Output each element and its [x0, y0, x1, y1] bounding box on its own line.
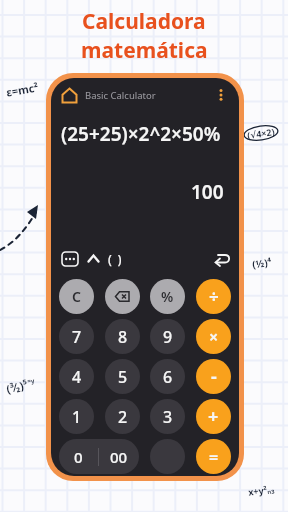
staticText: 1	[72, 406, 82, 428]
staticText: ε=mc²	[5, 79, 40, 100]
staticText: ( )	[108, 251, 124, 267]
staticText: matemática	[81, 36, 208, 65]
button[interactable]	[105, 279, 140, 314]
staticText: 8	[118, 326, 128, 348]
staticText: %	[161, 287, 174, 306]
staticText: C	[72, 287, 81, 306]
button[interactable]	[214, 88, 228, 102]
staticText: ×	[209, 326, 219, 348]
button[interactable]: +	[196, 399, 231, 434]
button[interactable]: 9	[150, 319, 185, 354]
button[interactable]: ×	[196, 319, 231, 354]
staticText: 0	[74, 447, 83, 467]
button[interactable]: 6	[150, 359, 185, 394]
staticText: 5	[118, 366, 128, 388]
button[interactable]: ÷	[196, 279, 231, 314]
button[interactable]: 2	[105, 399, 140, 434]
staticText: (½)⁴	[251, 255, 273, 271]
button[interactable]: C	[59, 279, 94, 314]
staticText: ⁼ʸ	[26, 375, 37, 390]
button[interactable]	[214, 252, 231, 266]
button[interactable]: %	[150, 279, 185, 314]
staticText: 3	[163, 406, 173, 428]
staticText: 100	[191, 179, 224, 205]
button[interactable]: 3	[150, 399, 185, 434]
button[interactable]: 5	[105, 359, 140, 394]
button[interactable]: -	[196, 359, 231, 394]
staticText: +	[208, 404, 219, 429]
staticText: Calculadora	[82, 7, 206, 36]
staticText: 4	[72, 366, 82, 388]
staticText: =	[209, 446, 219, 468]
button[interactable]: =	[196, 439, 231, 474]
staticText: 2	[118, 406, 128, 428]
button[interactable]	[150, 439, 185, 474]
staticText: 00	[110, 447, 128, 467]
staticText: 6	[163, 366, 173, 388]
button[interactable]: 7	[59, 319, 94, 354]
button[interactable]	[87, 252, 100, 266]
staticText: ÷	[209, 285, 219, 308]
staticText: (25+25)×2^2×50%	[61, 121, 221, 147]
button[interactable]: 8	[105, 319, 140, 354]
staticText: (√4×2)	[246, 125, 276, 141]
button[interactable]: 1	[59, 399, 94, 434]
button[interactable]: 4	[59, 359, 94, 394]
staticText: Basic Calculator	[85, 89, 156, 102]
button[interactable]: 0	[59, 439, 139, 474]
staticText: -	[211, 364, 217, 389]
button[interactable]	[62, 88, 77, 103]
staticText: 9	[163, 326, 173, 348]
staticText: (³⁄₂)⁵	[5, 376, 30, 396]
staticText: x+y²ₙ₃	[247, 482, 276, 498]
staticText: 7	[72, 326, 82, 348]
button[interactable]	[62, 252, 78, 266]
button[interactable]: ( )	[108, 251, 124, 267]
